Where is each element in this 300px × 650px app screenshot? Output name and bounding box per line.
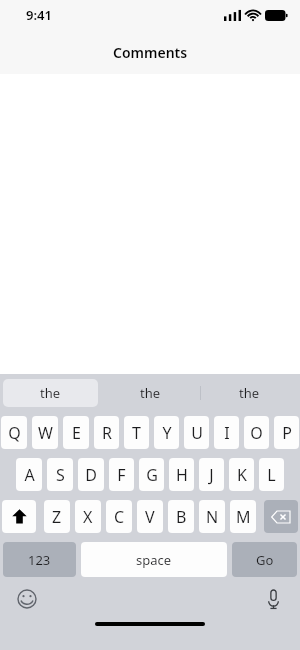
button[interactable]: N bbox=[199, 500, 225, 533]
button[interactable]: P bbox=[274, 416, 299, 449]
button[interactable]: T bbox=[124, 416, 149, 449]
staticText: Q bbox=[8, 422, 21, 444]
button[interactable]: the bbox=[202, 379, 297, 407]
staticText: J bbox=[209, 464, 214, 486]
button[interactable]: J bbox=[199, 458, 224, 491]
button[interactable]: I bbox=[214, 416, 239, 449]
staticText: the bbox=[40, 384, 61, 402]
staticText: R bbox=[102, 422, 112, 444]
button[interactable]: Q bbox=[1, 416, 27, 449]
button[interactable]: G bbox=[139, 458, 164, 491]
button[interactable]: 123 bbox=[3, 542, 76, 577]
button[interactable]: F bbox=[109, 458, 134, 491]
button[interactable]: U bbox=[184, 416, 209, 449]
button[interactable]: the bbox=[103, 379, 198, 407]
button[interactable]: Y bbox=[154, 416, 179, 449]
staticText: Go bbox=[256, 551, 274, 569]
staticText: C bbox=[114, 506, 125, 528]
staticText: L bbox=[267, 464, 276, 486]
button[interactable]: the bbox=[3, 379, 98, 407]
button[interactable]: C bbox=[106, 500, 132, 533]
button[interactable]: X bbox=[75, 500, 101, 533]
button[interactable]: M bbox=[230, 500, 256, 533]
staticText: S bbox=[56, 464, 65, 486]
button[interactable]: Dictation bbox=[260, 586, 286, 612]
staticText: H bbox=[176, 464, 188, 486]
button[interactable]: H bbox=[169, 458, 194, 491]
staticText: M bbox=[236, 506, 251, 528]
staticText: Z bbox=[52, 506, 62, 528]
staticText: U bbox=[191, 422, 203, 444]
staticText: T bbox=[132, 422, 141, 444]
button[interactable]: space bbox=[81, 542, 227, 577]
staticText: N bbox=[206, 506, 219, 528]
button[interactable]: W bbox=[32, 416, 58, 449]
staticText: W bbox=[38, 422, 53, 444]
button[interactable]: D bbox=[78, 458, 104, 491]
staticText: O bbox=[250, 422, 263, 444]
button[interactable]: A bbox=[16, 458, 42, 491]
staticText: D bbox=[85, 464, 97, 486]
button[interactable]: B bbox=[168, 500, 194, 533]
button[interactable]: O bbox=[244, 416, 269, 449]
staticText: I bbox=[224, 422, 230, 444]
button[interactable]: Emoji bbox=[14, 586, 40, 612]
staticText: F bbox=[117, 464, 126, 486]
staticText: A bbox=[24, 464, 35, 486]
staticText: the bbox=[140, 384, 161, 402]
staticText: 9:41 bbox=[26, 6, 52, 24]
staticText: space bbox=[136, 551, 172, 569]
button[interactable]: V bbox=[137, 500, 163, 533]
staticText: Comments bbox=[113, 43, 188, 62]
staticText: V bbox=[145, 506, 155, 528]
button[interactable]: Go bbox=[232, 542, 297, 577]
button[interactable]: Z bbox=[44, 500, 70, 533]
button[interactable]: R bbox=[94, 416, 119, 449]
staticText: B bbox=[176, 506, 187, 528]
button[interactable]: Backspace bbox=[264, 500, 298, 533]
staticText: X bbox=[83, 506, 93, 528]
staticText: the bbox=[239, 384, 260, 402]
staticText: G bbox=[146, 464, 158, 486]
button[interactable]: Shift bbox=[2, 500, 36, 533]
button[interactable]: E bbox=[63, 416, 89, 449]
staticText: Y bbox=[162, 422, 172, 444]
staticText: P bbox=[282, 422, 292, 444]
staticText: K bbox=[237, 464, 247, 486]
button[interactable]: S bbox=[47, 458, 73, 491]
staticText: E bbox=[72, 422, 81, 444]
button[interactable]: L bbox=[259, 458, 284, 491]
button[interactable]: K bbox=[229, 458, 254, 491]
staticText: 123 bbox=[28, 551, 51, 569]
